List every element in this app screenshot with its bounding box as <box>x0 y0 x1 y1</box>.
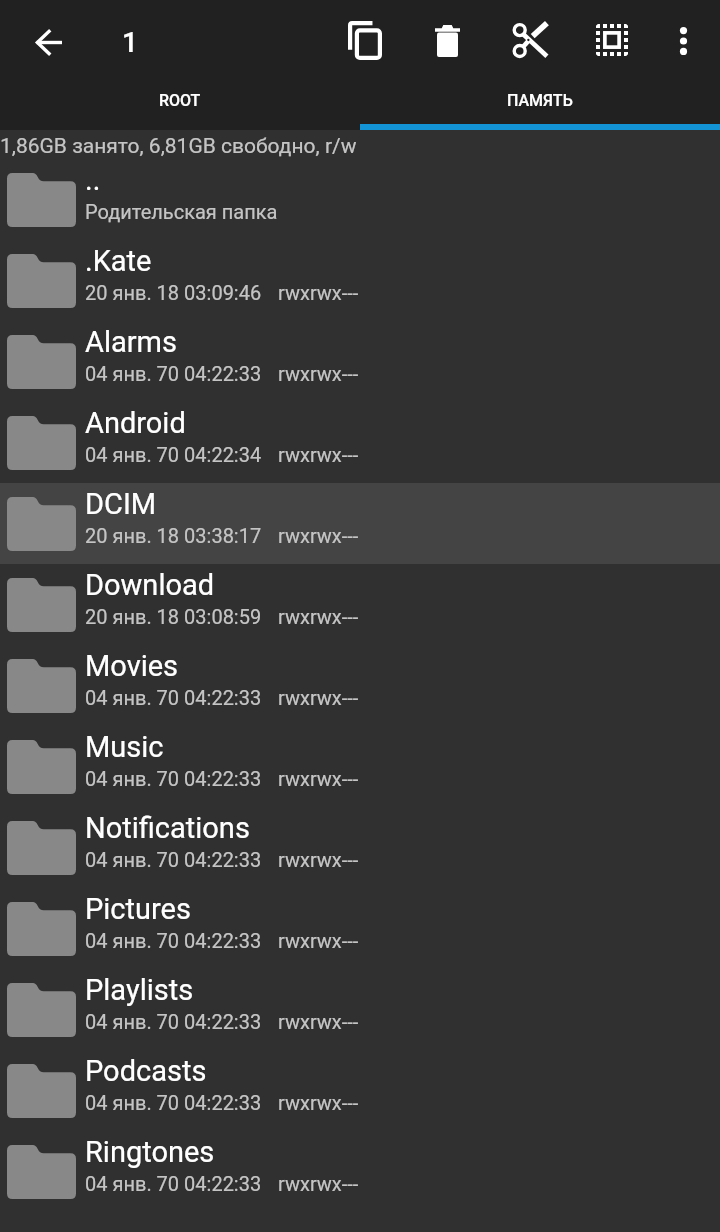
staticText: rwxrwx--- <box>278 767 359 790</box>
staticText: 04 янв. 70 04:22:33 <box>85 686 262 709</box>
staticText: rwxrwx--- <box>278 848 359 871</box>
staticText: .. <box>85 163 101 197</box>
button[interactable]: Alarms <box>0 321 720 402</box>
staticText: DCIM <box>85 487 157 521</box>
staticText: rwxrwx--- <box>278 443 359 466</box>
staticText: 1,86GB занято, 6,81GB свободно, r/w <box>0 134 357 159</box>
button[interactable]: Copy <box>328 0 402 78</box>
staticText: rwxrwx--- <box>278 362 359 385</box>
button[interactable]: Ringtones <box>0 1131 720 1212</box>
button[interactable]: Delete <box>415 0 480 78</box>
staticText: rwxrwx--- <box>278 605 359 628</box>
staticText: rwxrwx--- <box>278 686 359 709</box>
button[interactable]: Select all <box>576 0 648 78</box>
button[interactable]: Movies <box>0 645 720 726</box>
button[interactable]: Podcasts <box>0 1050 720 1131</box>
staticText: Pictures <box>85 892 191 926</box>
button[interactable]: ROOT <box>0 78 360 130</box>
staticText: 20 янв. 18 03:08:59 <box>85 605 262 628</box>
staticText: ROOT <box>159 91 201 110</box>
button[interactable]: ПАМЯТЬ <box>360 78 720 130</box>
button[interactable]: Android <box>0 402 720 483</box>
staticText: Ringtones <box>85 1135 215 1169</box>
button[interactable]: Cut <box>492 0 568 78</box>
staticText: Podcasts <box>85 1054 207 1088</box>
staticText: rwxrwx--- <box>278 281 359 304</box>
button[interactable]: More options <box>652 0 714 78</box>
staticText: .Kate <box>85 244 152 278</box>
button[interactable]: Playlists <box>0 969 720 1050</box>
button[interactable]: .Kate <box>0 240 720 321</box>
staticText: 04 янв. 70 04:22:33 <box>85 767 262 790</box>
staticText: Родительская папка <box>85 200 278 223</box>
staticText: Notifications <box>85 811 250 845</box>
button[interactable]: Music <box>0 726 720 807</box>
staticText: Playlists <box>85 973 194 1007</box>
staticText: Android <box>85 406 186 440</box>
staticText: 04 янв. 70 04:22:33 <box>85 929 262 952</box>
button[interactable]: DCIM <box>0 483 720 564</box>
staticText: 04 янв. 70 04:22:33 <box>85 362 262 385</box>
staticText: rwxrwx--- <box>278 524 359 547</box>
button[interactable]: Download <box>0 564 720 645</box>
staticText: 04 янв. 70 04:22:33 <box>85 848 262 871</box>
button[interactable]: Back <box>14 0 84 78</box>
staticText: 20 янв. 18 03:09:46 <box>85 281 262 304</box>
staticText: ПАМЯТЬ <box>507 91 573 110</box>
staticText: 04 янв. 70 04:22:33 <box>85 1010 262 1033</box>
staticText: Music <box>85 730 164 764</box>
staticText: 04 янв. 70 04:22:33 <box>85 1091 262 1114</box>
button[interactable]: Notifications <box>0 807 720 888</box>
button[interactable]: .. <box>0 159 720 240</box>
staticText: rwxrwx--- <box>278 929 359 952</box>
staticText: Movies <box>85 649 179 683</box>
staticText: rwxrwx--- <box>278 1091 359 1114</box>
staticText: rwxrwx--- <box>278 1172 359 1195</box>
staticText: Download <box>85 568 215 602</box>
staticText: rwxrwx--- <box>278 1010 359 1033</box>
staticText: Alarms <box>85 325 177 359</box>
staticText: 04 янв. 70 04:22:33 <box>85 1172 262 1195</box>
staticText: 20 янв. 18 03:38:17 <box>85 524 262 547</box>
staticText: 04 янв. 70 04:22:34 <box>85 443 262 466</box>
staticText: 1 <box>122 26 138 59</box>
button[interactable]: Pictures <box>0 888 720 969</box>
